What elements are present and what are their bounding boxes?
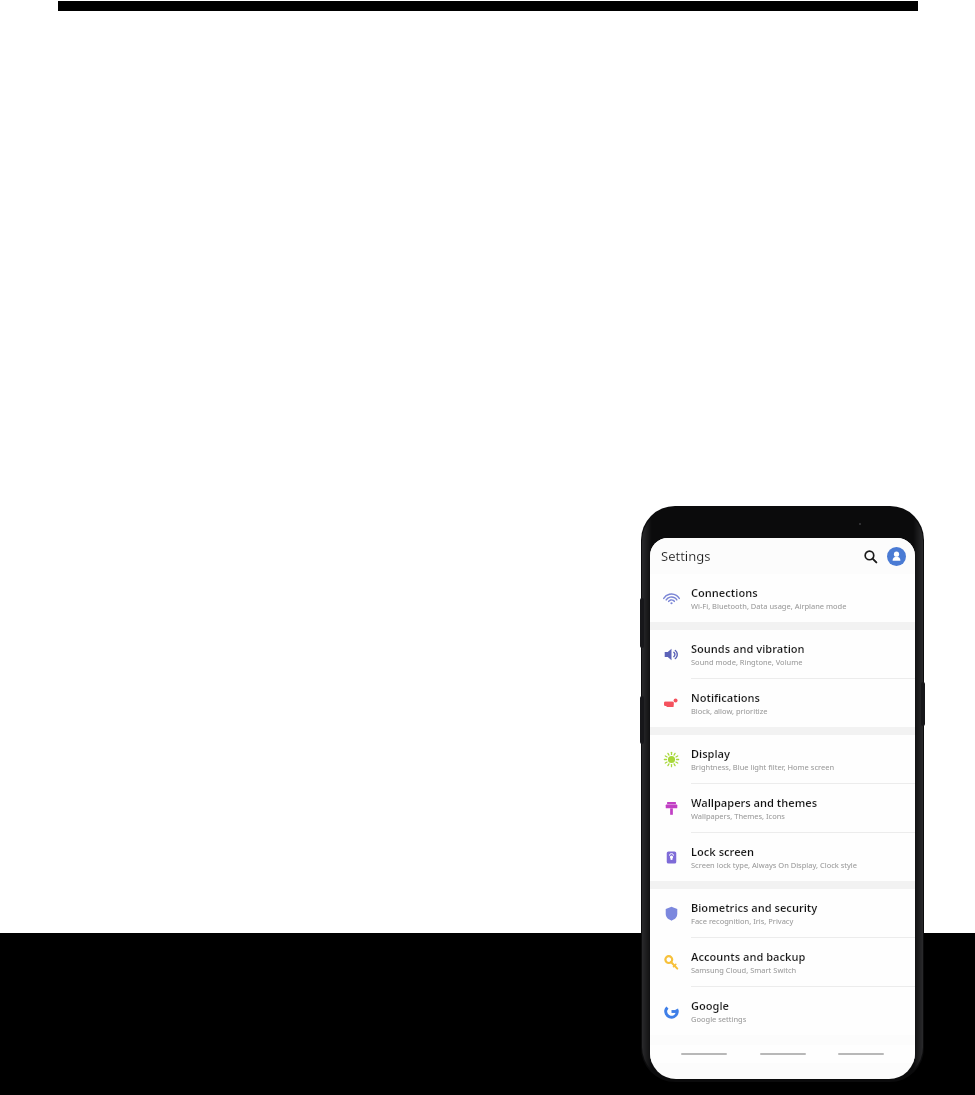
- staticText: Settings: [661, 547, 711, 565]
- staticText: Brightness, Blue light filter, Home scre…: [691, 762, 835, 772]
- button[interactable]: Accounts and backup: [650, 938, 915, 986]
- staticText: Notifications: [691, 690, 761, 705]
- button[interactable]: Navigation key: [836, 1047, 886, 1061]
- staticText: Samsung Cloud, Smart Switch: [691, 965, 797, 975]
- button[interactable]: Navigation key: [758, 1047, 808, 1061]
- staticText: Wallpapers and themes: [691, 795, 818, 810]
- staticText: Sounds and vibration: [691, 641, 805, 656]
- button[interactable]: Sounds and vibration: [650, 630, 915, 678]
- button[interactable]: Connections: [650, 574, 915, 622]
- button[interactable]: Navigation key: [679, 1047, 729, 1061]
- staticText: Wi-Fi, Bluetooth, Data usage, Airplane m…: [691, 601, 847, 611]
- button[interactable]: Search: [859, 545, 881, 567]
- staticText: Google settings: [691, 1014, 747, 1024]
- staticText: Face recognition, Iris, Privacy: [691, 916, 794, 926]
- staticText: Screen lock type, Always On Display, Clo…: [691, 860, 858, 870]
- staticText: Google: [691, 998, 729, 1013]
- button[interactable]: Lock screen: [650, 833, 915, 881]
- staticText: Sound mode, Ringtone, Volume: [691, 657, 803, 667]
- staticText: Biometrics and security: [691, 900, 818, 915]
- staticText: Display: [691, 746, 731, 761]
- staticText: Accounts and backup: [691, 949, 806, 964]
- staticText: Wallpapers, Themes, Icons: [691, 811, 785, 821]
- button[interactable]: Display: [650, 735, 915, 783]
- button[interactable]: Samsung account: [887, 547, 906, 566]
- staticText: Lock screen: [691, 844, 755, 859]
- button[interactable]: Biometrics and security: [650, 889, 915, 937]
- button[interactable]: Notifications: [650, 679, 915, 727]
- staticText: Block, allow, prioritize: [691, 706, 768, 716]
- button[interactable]: Wallpapers and themes: [650, 784, 915, 832]
- staticText: Connections: [691, 585, 758, 600]
- button[interactable]: Google: [650, 987, 915, 1035]
